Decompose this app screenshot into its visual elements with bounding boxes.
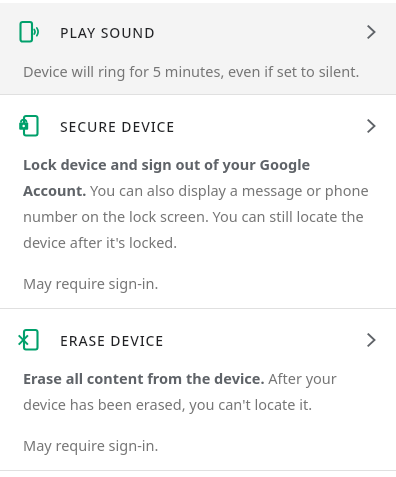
staticText: SECURE DEVICE [60,117,175,136]
staticText: PLAY SOUND [60,23,156,42]
staticText: May require sign-in. [23,273,159,293]
other: Open [360,21,382,43]
button[interactable]: Secure device [0,104,396,148]
other: Open [360,329,382,351]
staticText: Lock device and sign out of your Google … [23,154,370,252]
button[interactable]: Erase device [0,318,396,362]
staticText: Device will ring for 5 minutes, even if … [23,61,360,81]
staticText: ERASE DEVICE [60,331,165,350]
other: Open [360,115,382,137]
staticText: Erase all content from the device. After… [23,368,370,414]
button[interactable]: Play sound [0,10,396,54]
staticText: May require sign-in. [23,435,159,455]
